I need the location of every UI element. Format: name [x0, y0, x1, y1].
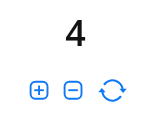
staticText: 4 [65, 8, 86, 57]
button[interactable]: Increment [29, 80, 49, 100]
button[interactable]: Decrement [63, 80, 83, 100]
button[interactable]: Reset [99, 77, 126, 104]
